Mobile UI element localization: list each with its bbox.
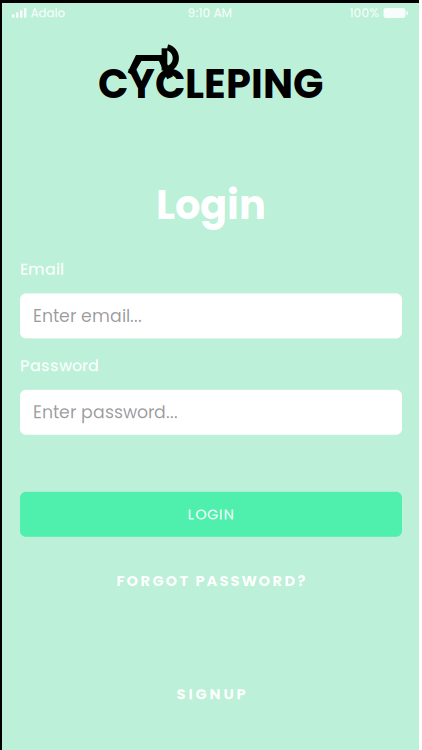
staticText: Login (156, 177, 266, 233)
button[interactable]: Enter email... (20, 293, 402, 338)
staticText: CYCLEPING (98, 56, 323, 112)
staticText: SIGNUP (176, 684, 245, 704)
button[interactable]: SIGNUP (0, 682, 422, 706)
staticText: LOGIN (187, 504, 235, 524)
staticText: Email (20, 258, 64, 280)
staticText: Enter email... (33, 304, 142, 328)
staticText: FORGOT PASSWORD? (116, 570, 305, 591)
staticText: 9:10 AM (187, 5, 232, 21)
button[interactable]: FORGOT PASSWORD? (0, 569, 422, 593)
staticText: 100% (349, 5, 379, 21)
staticText: Adalo (30, 5, 65, 21)
button[interactable]: Enter password... (20, 390, 402, 435)
staticText: Enter password... (33, 400, 178, 424)
staticText: Password (20, 354, 99, 377)
button[interactable]: LOGIN (20, 492, 402, 537)
